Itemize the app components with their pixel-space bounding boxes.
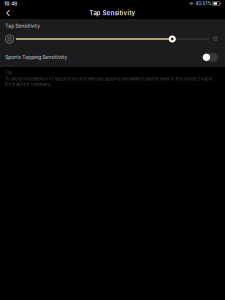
staticText: 4G	[195, 1, 201, 6]
button[interactable]: Back	[0, 7, 19, 19]
staticText: 12	[213, 36, 218, 42]
staticText: Tap Sensitivity	[89, 9, 135, 17]
button[interactable]: Sports Tapping Sensitivity	[202, 50, 224, 64]
staticText: Tap Sensitivity	[5, 23, 40, 29]
staticText: 51%	[202, 1, 211, 6]
staticText: Tip:	[5, 70, 13, 75]
staticText: Sports Tapping Sensitivity	[5, 54, 67, 60]
staticText: 18:48	[4, 0, 17, 7]
staticText: To avoid misdetection of tapping during …	[5, 76, 212, 87]
